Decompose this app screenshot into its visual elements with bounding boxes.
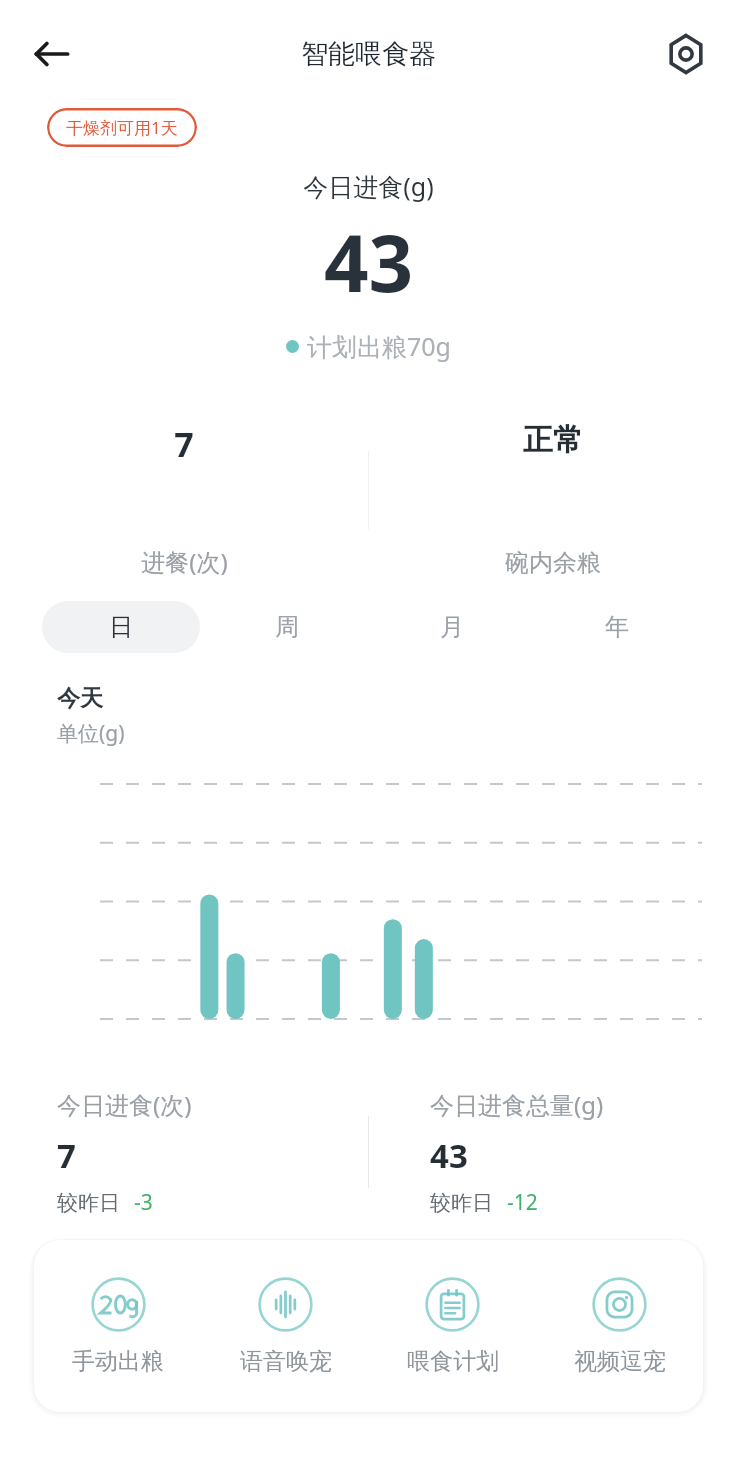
staticText: 今日进食总量(g) bbox=[430, 1088, 604, 1121]
button[interactable]: Settings bbox=[655, 23, 717, 85]
staticText: 7 bbox=[174, 421, 194, 467]
button[interactable]: 手动出粮 bbox=[34, 1240, 202, 1412]
staticText: 今日进食(g) bbox=[0, 169, 737, 203]
button[interactable]: 月 bbox=[373, 601, 530, 653]
staticText: 今日进食(次) bbox=[57, 1088, 192, 1121]
staticText: 43 bbox=[430, 1133, 468, 1178]
button[interactable]: 视频逗宠 bbox=[536, 1240, 703, 1412]
staticText: 43 bbox=[0, 209, 737, 315]
staticText: 单位(g) bbox=[57, 719, 125, 748]
staticText: 碗内余粮 bbox=[505, 548, 601, 578]
staticText: 较昨日 bbox=[57, 1190, 120, 1216]
button[interactable]: 干燥剂可用1天 bbox=[47, 108, 197, 147]
staticText: 视频逗宠 bbox=[574, 1347, 666, 1376]
button[interactable]: Back bbox=[18, 20, 86, 88]
staticText: 手动出粮 bbox=[72, 1347, 164, 1376]
staticText: -3 bbox=[134, 1188, 153, 1217]
button[interactable]: 语音唤宠 bbox=[202, 1240, 369, 1412]
staticText: 7 bbox=[57, 1133, 76, 1178]
staticText: 语音唤宠 bbox=[240, 1347, 332, 1376]
staticText: 较昨日 bbox=[430, 1190, 493, 1216]
button[interactable]: 7 bbox=[0, 403, 368, 588]
button[interactable]: 喂食计划 bbox=[369, 1240, 536, 1412]
staticText: 日 bbox=[109, 612, 133, 642]
button[interactable]: 今日进食(次) bbox=[0, 1068, 368, 1228]
staticText: 今天 bbox=[57, 684, 103, 713]
staticText: -12 bbox=[507, 1188, 538, 1217]
staticText: 周 bbox=[275, 612, 299, 642]
staticText: 智能喂食器 bbox=[301, 37, 436, 71]
staticText: 正常 bbox=[523, 421, 583, 459]
staticText: 进餐(次) bbox=[141, 545, 228, 578]
staticText: 月 bbox=[440, 612, 464, 642]
staticText: 喂食计划 bbox=[407, 1347, 499, 1376]
button[interactable]: 今日进食总量(g) bbox=[368, 1068, 737, 1228]
staticText: 干燥剂可用1天 bbox=[66, 116, 178, 139]
button[interactable]: 周 bbox=[208, 601, 365, 653]
staticText: 年 bbox=[605, 612, 629, 642]
button[interactable]: 正常 bbox=[368, 403, 737, 588]
button[interactable]: 年 bbox=[538, 601, 695, 653]
button[interactable]: 日 bbox=[42, 601, 200, 653]
staticText: 计划出粮70g bbox=[307, 329, 451, 363]
